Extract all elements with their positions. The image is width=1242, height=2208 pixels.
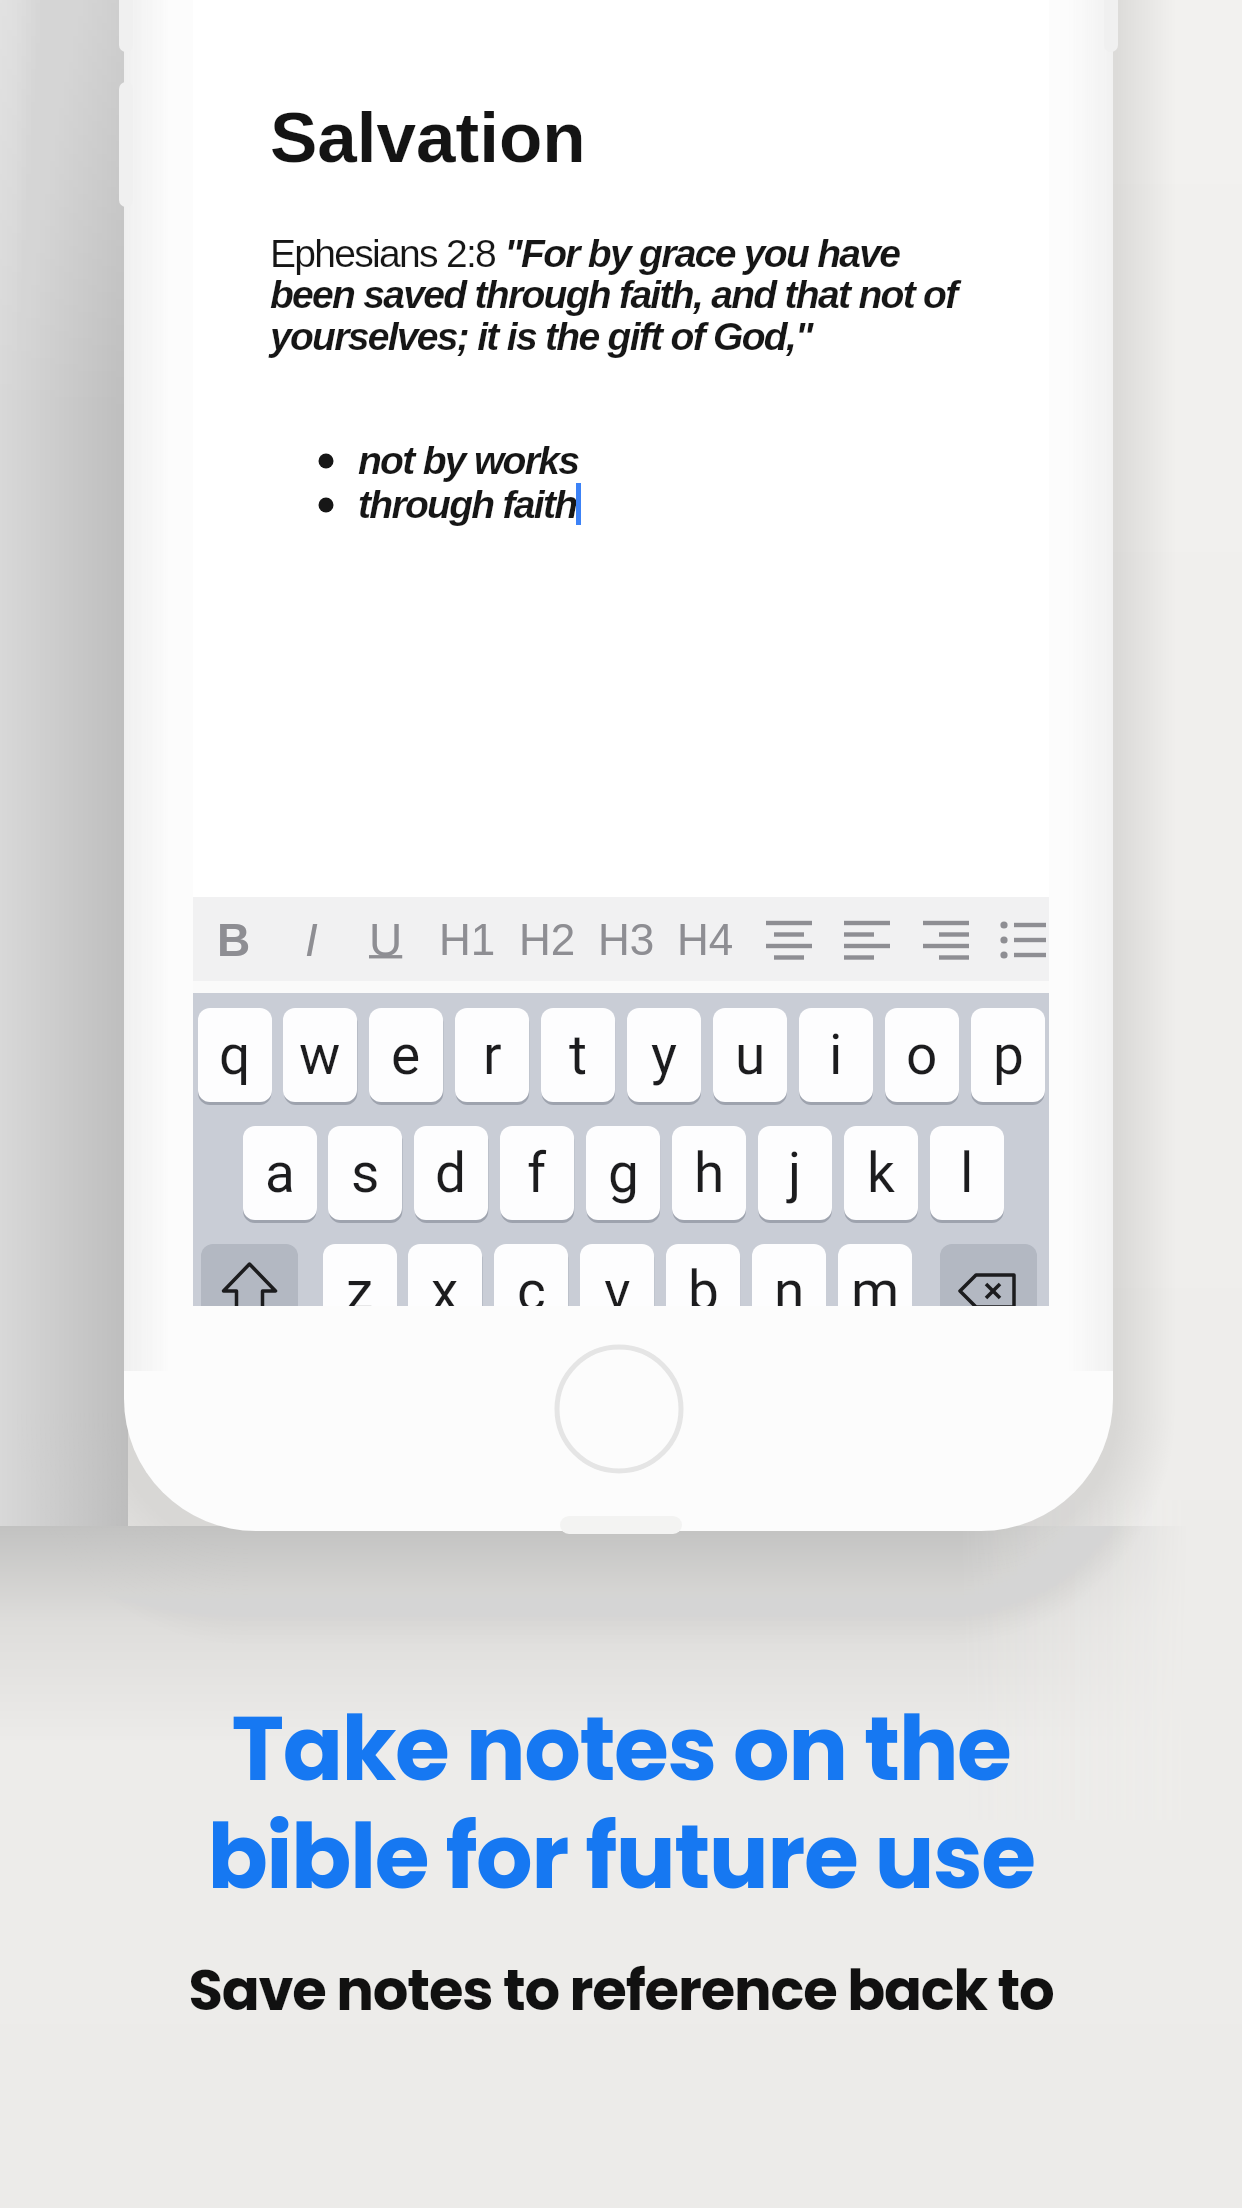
button[interactable]: H1	[412, 897, 522, 981]
staticText: m	[851, 1259, 900, 1306]
staticText: s	[351, 1141, 380, 1205]
staticText: a	[265, 1141, 295, 1205]
button[interactable]: w	[283, 1008, 357, 1102]
button[interactable]	[201, 1244, 298, 1306]
button[interactable]: s	[328, 1126, 402, 1220]
staticText: l	[960, 1141, 974, 1205]
button[interactable]: y	[627, 1008, 701, 1102]
staticText: w	[299, 1023, 341, 1087]
staticText: n	[774, 1259, 805, 1306]
button[interactable]: h	[672, 1126, 746, 1220]
staticText: through faith	[358, 483, 577, 527]
button[interactable]: m	[838, 1244, 912, 1306]
staticText: i	[829, 1023, 843, 1087]
staticText: r	[483, 1023, 502, 1087]
button[interactable]: i	[799, 1008, 873, 1102]
staticText: Ephesians 2:8 "For by grace you have	[270, 232, 900, 276]
staticText: j	[788, 1141, 802, 1205]
staticText: c	[517, 1259, 546, 1306]
staticText: u	[735, 1023, 766, 1087]
staticText: B	[217, 914, 251, 965]
staticText: b	[688, 1259, 719, 1306]
staticText: bible for future use	[0, 1795, 1242, 1920]
staticText: f	[527, 1141, 547, 1205]
staticText: H4	[677, 915, 734, 964]
staticText: d	[435, 1141, 467, 1205]
button[interactable]: x	[408, 1244, 482, 1306]
staticText: q	[219, 1023, 251, 1087]
button[interactable]: e	[369, 1008, 443, 1102]
button[interactable]: b	[666, 1244, 740, 1306]
button[interactable]: u	[713, 1008, 787, 1102]
button[interactable]: a	[243, 1126, 317, 1220]
button[interactable]: v	[580, 1244, 654, 1306]
button[interactable]: n	[752, 1244, 826, 1306]
staticText: o	[906, 1023, 938, 1087]
staticText: yourselves; it is the gift of God,"	[270, 315, 812, 359]
staticText: H3	[598, 915, 655, 964]
button[interactable]: U	[331, 897, 441, 981]
staticText: I	[305, 914, 318, 965]
staticText: not by works	[358, 439, 579, 483]
button[interactable]: k	[844, 1126, 918, 1220]
staticText: Take notes on the	[0, 1687, 1242, 1812]
staticText: e	[391, 1023, 421, 1087]
button[interactable]: g	[586, 1126, 660, 1220]
staticText: U	[369, 914, 403, 965]
staticText: x	[431, 1259, 459, 1306]
staticText: y	[651, 1023, 678, 1087]
button[interactable]: q	[198, 1008, 272, 1102]
staticText: g	[608, 1141, 639, 1205]
staticText: Salvation	[270, 98, 586, 177]
button[interactable]: B	[193, 897, 289, 981]
button[interactable]: d	[414, 1126, 488, 1220]
staticText: H1	[439, 915, 496, 964]
staticText: H2	[519, 915, 576, 964]
button[interactable]: o	[885, 1008, 959, 1102]
staticText: h	[694, 1141, 725, 1205]
staticText: k	[867, 1141, 895, 1205]
button[interactable]: H4	[650, 897, 760, 981]
staticText: t	[569, 1023, 587, 1087]
staticText: z	[346, 1259, 374, 1306]
button[interactable]: H3	[571, 897, 681, 981]
button[interactable]	[940, 1244, 1037, 1306]
button[interactable]: j	[758, 1126, 832, 1220]
button[interactable]: l	[930, 1126, 1004, 1220]
button[interactable]: H2	[492, 897, 602, 981]
button[interactable]: z	[323, 1244, 397, 1306]
button[interactable]: I	[256, 897, 366, 981]
staticText: p	[993, 1023, 1024, 1087]
staticText: v	[604, 1259, 631, 1306]
button[interactable]: r	[455, 1008, 529, 1102]
button[interactable]: c	[494, 1244, 568, 1306]
staticText: Save notes to reference back to	[0, 1951, 1242, 2029]
staticText: been saved through faith, and that not o…	[270, 273, 957, 317]
button[interactable]: f	[500, 1126, 574, 1220]
button[interactable]: p	[971, 1008, 1045, 1102]
button[interactable]: t	[541, 1008, 615, 1102]
